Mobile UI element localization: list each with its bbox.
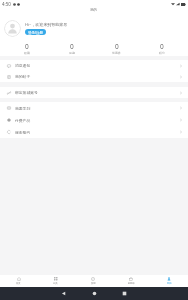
staticText: 0 [70,42,74,51]
staticText: 我要学到 [15,106,31,111]
staticText: 登录/注册 [28,30,43,35]
staticText: 我的 [167,282,172,285]
staticText: 4:50 [2,1,11,7]
staticText: 服务预约 [15,130,31,135]
staticText: 首页 [16,282,21,285]
staticText: 消息通知 [15,63,31,68]
button[interactable]: 绑定第城账号 [0,87,188,98]
other: Recents [122,291,127,296]
button[interactable]: 登录/注册 [25,29,46,35]
staticText: 0 [25,42,29,51]
button[interactable]: 0 [4,42,49,55]
staticText: 积分 [159,51,165,55]
button[interactable]: 我的 [150,275,188,287]
staticText: 0 [160,42,164,51]
staticText: 发现 [91,282,96,285]
button[interactable]: 付费产品 [0,114,188,126]
staticText: 购物车 [128,282,135,285]
other: Home [92,291,97,296]
button[interactable]: Avatar [4,20,21,37]
staticText: 付费产品 [15,118,31,123]
staticText: Hi~，欢迎来到智能家居 [25,22,68,27]
staticText: 足迹 [69,51,75,55]
staticText: 绑定第城账号 [15,90,38,95]
staticText: 收藏 [24,51,30,55]
button[interactable]: 0 [94,42,139,55]
button[interactable]: 服务预约 [0,126,188,138]
button[interactable]: 我的帖子 [0,71,188,82]
button[interactable]: 发现 [74,275,112,287]
button[interactable]: 分类 [37,275,74,287]
button[interactable]: 0 [139,42,184,55]
staticText: 我的帖子 [15,74,31,79]
staticText: 我的 [90,8,98,13]
button[interactable]: 消息通知 [0,60,188,71]
other: Back [61,291,66,296]
staticText: 优惠券 [112,51,121,55]
button[interactable]: 0 [49,42,94,55]
button[interactable]: 购物车 [112,275,150,287]
staticText: 分类 [53,282,58,285]
button[interactable]: 我要学到 [0,102,188,114]
staticText: 0 [115,42,119,51]
button[interactable]: 首页 [0,275,37,287]
